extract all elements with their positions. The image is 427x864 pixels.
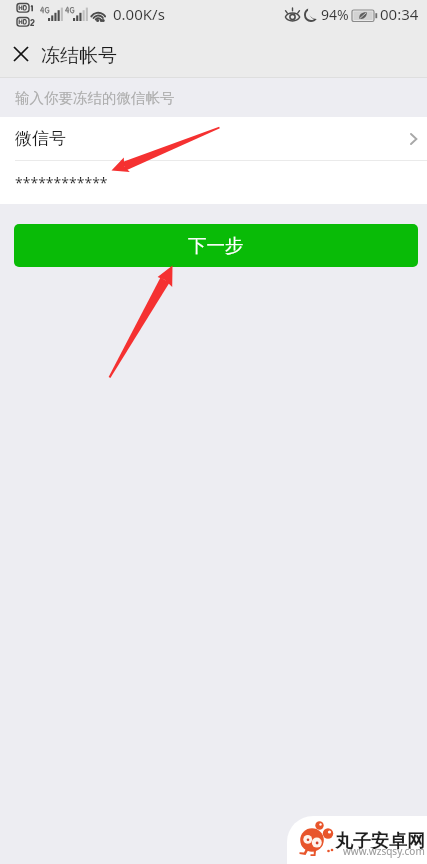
staticText: ************	[15, 173, 108, 192]
staticText: 丸子安卓网	[335, 830, 425, 853]
staticText: www.wzsqsy.com	[343, 844, 425, 858]
staticText: 0.00K/s	[113, 4, 165, 24]
staticText: 94%	[321, 5, 349, 24]
button[interactable]: ************	[0, 161, 427, 204]
staticText: 微信号	[15, 128, 66, 149]
button[interactable]: Close	[0, 30, 41, 77]
staticText: 00:34	[380, 4, 419, 24]
button[interactable]: 微信号	[0, 117, 427, 160]
staticText: 下一步	[188, 234, 244, 257]
staticText: 冻结帐号	[41, 44, 117, 68]
staticText: 输入你要冻结的微信帐号	[15, 89, 175, 107]
button[interactable]: 下一步	[14, 224, 418, 267]
